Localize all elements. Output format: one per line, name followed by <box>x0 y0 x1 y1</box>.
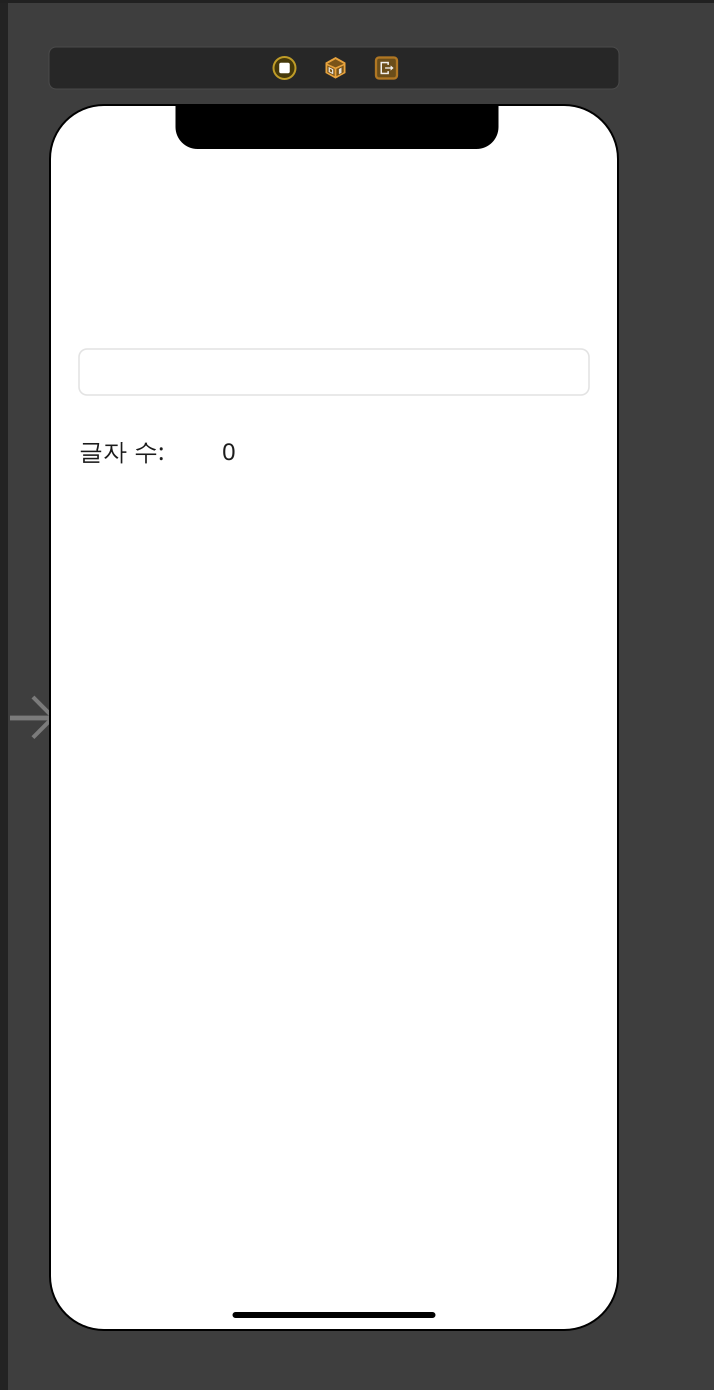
button[interactable]: Stop preview <box>271 55 297 81</box>
button[interactable] <box>79 349 589 395</box>
staticText: 0 <box>222 435 236 467</box>
button[interactable]: Next <box>10 695 56 741</box>
button[interactable]: Send to device <box>373 55 399 81</box>
staticText: 글자 수: <box>79 435 164 467</box>
button[interactable]: Variants <box>322 55 348 81</box>
